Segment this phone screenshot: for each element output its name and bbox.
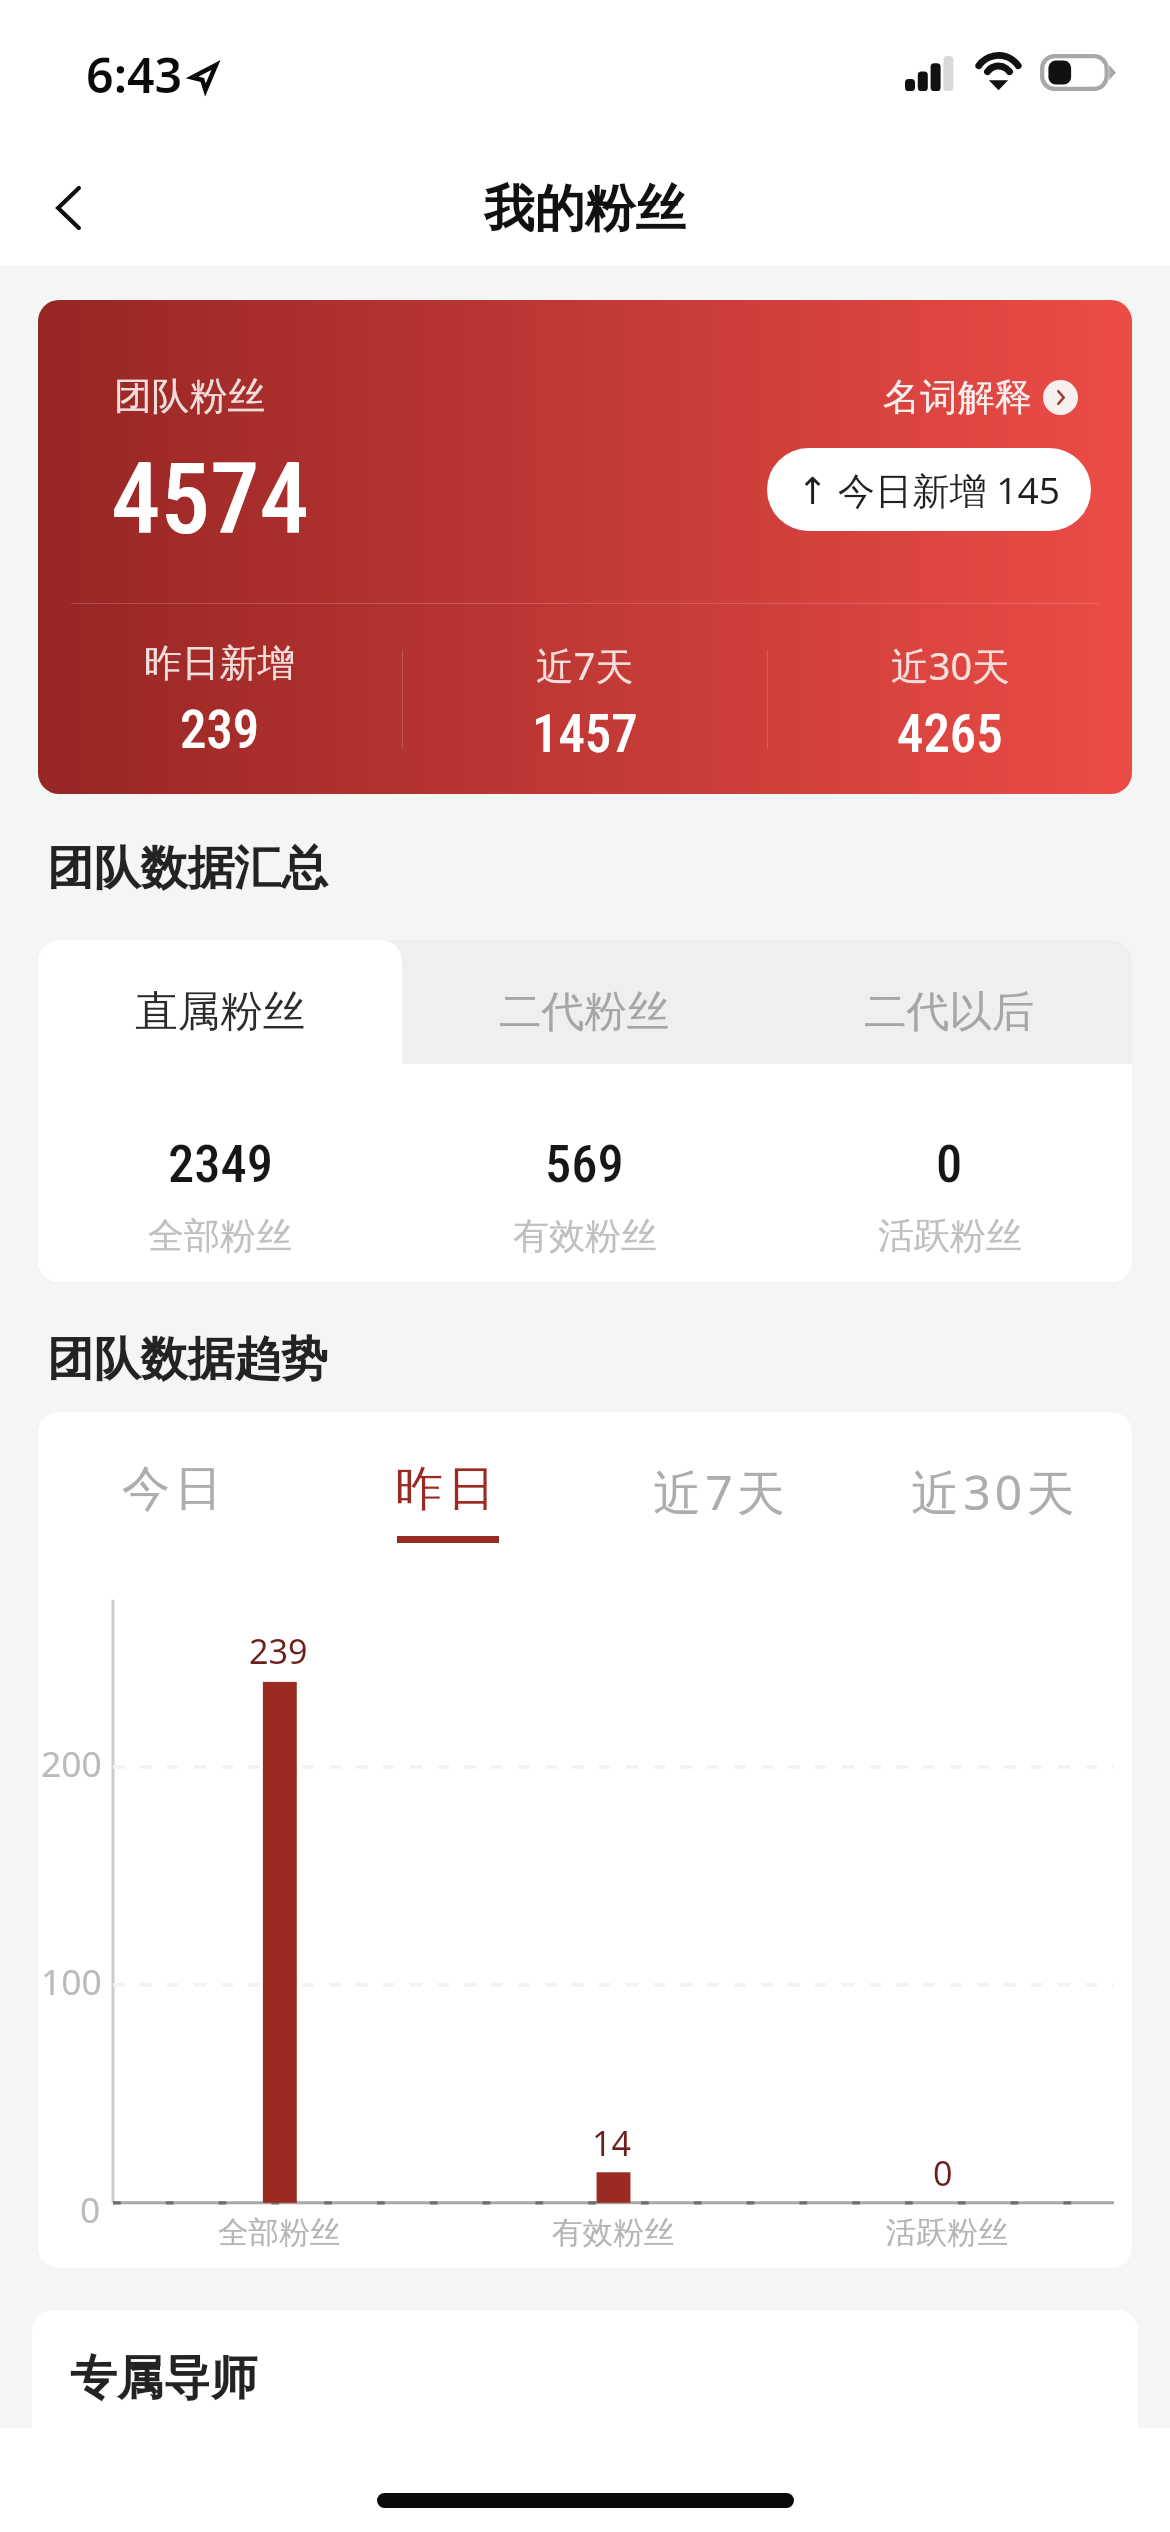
- staticText: 14: [592, 2119, 632, 2166]
- staticText: 239: [180, 699, 260, 761]
- staticText: 二代粉丝: [499, 985, 670, 1039]
- staticText: 近7天: [536, 640, 634, 692]
- staticText: 200: [41, 1739, 102, 1787]
- button[interactable]: 团队粉丝: [38, 300, 1132, 794]
- staticText: 昨日: [395, 1459, 500, 1519]
- staticText: 0: [933, 2149, 953, 2196]
- staticText: 直属粉丝: [135, 985, 306, 1039]
- button[interactable]: 专属导师: [32, 2310, 1138, 2430]
- staticText: 专属导师: [70, 2349, 258, 2408]
- button[interactable]: 二代粉丝: [402, 940, 767, 1064]
- staticText: 我的粉丝: [484, 177, 686, 240]
- staticText: 活跃粉丝: [878, 1213, 1022, 1258]
- button[interactable]: Back: [0, 150, 138, 266]
- staticText: 近7天: [653, 1459, 790, 1525]
- staticText: 1457: [532, 703, 638, 765]
- staticText: 0: [80, 2185, 101, 2233]
- button[interactable]: 近7天: [584, 1459, 858, 1555]
- staticText: 团队数据汇总: [47, 839, 328, 898]
- staticText: 0: [936, 1133, 963, 1195]
- staticText: 有效粉丝: [552, 2214, 675, 2253]
- staticText: 569: [545, 1133, 624, 1195]
- staticText: 近30天: [911, 1459, 1079, 1525]
- staticText: 近30天: [891, 640, 1010, 692]
- button[interactable]: 昨日: [311, 1459, 584, 1555]
- staticText: 100: [41, 1957, 102, 2005]
- staticText: 昨日新增: [144, 640, 296, 688]
- staticText: 239: [249, 1627, 308, 1674]
- staticText: 4265: [897, 703, 1003, 765]
- staticText: 二代以后: [864, 985, 1035, 1039]
- staticText: 团队粉丝: [114, 373, 266, 421]
- staticText: 2349: [168, 1133, 273, 1195]
- button[interactable]: 近30天: [858, 1459, 1132, 1555]
- staticText: 有效粉丝: [513, 1213, 657, 1258]
- staticText: 团队数据趋势: [47, 1330, 328, 1389]
- staticText: 今日: [122, 1459, 227, 1519]
- button[interactable]: 二代以后: [767, 940, 1132, 1064]
- staticText: 全部粉丝: [148, 1213, 292, 1258]
- staticText: ↑ 今日新增 145: [797, 464, 1061, 515]
- button[interactable]: 名词解释: [883, 374, 1078, 421]
- staticText: 活跃粉丝: [886, 2214, 1009, 2253]
- staticText: 6:43: [86, 41, 183, 107]
- staticText: 全部粉丝: [218, 2214, 341, 2253]
- staticText: 名词解释: [883, 374, 1032, 421]
- button[interactable]: 直属粉丝: [38, 940, 402, 1064]
- staticText: 4574: [111, 441, 309, 557]
- button[interactable]: ↑ 今日新增 145: [767, 448, 1091, 531]
- button[interactable]: 今日: [38, 1459, 311, 1555]
